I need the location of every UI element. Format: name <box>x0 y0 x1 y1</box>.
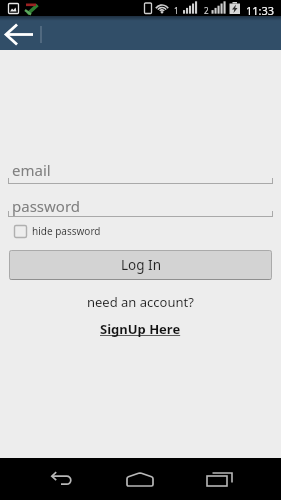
button[interactable] <box>0 16 48 50</box>
staticText: Log In <box>121 256 161 274</box>
staticText: 2 <box>204 5 209 16</box>
staticText: email <box>12 160 51 180</box>
button[interactable]: password <box>8 192 273 218</box>
button[interactable]: hide password <box>14 224 101 238</box>
staticText: 11:33 <box>246 3 275 18</box>
staticText: need an account? <box>87 293 194 311</box>
staticText: password <box>12 196 80 216</box>
button[interactable] <box>26 458 96 500</box>
button[interactable]: email <box>8 156 273 185</box>
button[interactable] <box>184 458 254 500</box>
button[interactable]: Log In <box>9 250 272 280</box>
staticText: hide password <box>32 224 101 238</box>
staticText: 1 <box>174 5 179 16</box>
button[interactable] <box>105 458 175 500</box>
button[interactable]: SignUp Here <box>100 320 181 338</box>
